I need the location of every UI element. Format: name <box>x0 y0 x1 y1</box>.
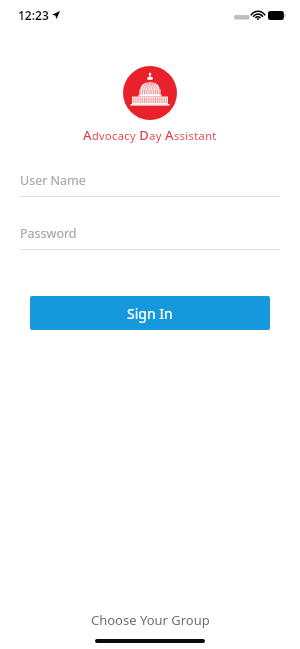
button[interactable]: Sign In <box>30 296 270 330</box>
staticText: Password <box>20 225 77 242</box>
staticText: Choose Your Group <box>91 611 210 629</box>
staticText: Sign In <box>127 304 173 323</box>
staticText: Advocacy Day Assistant <box>83 126 217 144</box>
button[interactable]: User Name <box>20 170 280 190</box>
button[interactable]: Password <box>20 223 280 243</box>
staticText: 12:23 <box>18 7 49 23</box>
staticText: User Name <box>20 172 86 189</box>
button[interactable]: Choose Your Group <box>75 607 226 633</box>
